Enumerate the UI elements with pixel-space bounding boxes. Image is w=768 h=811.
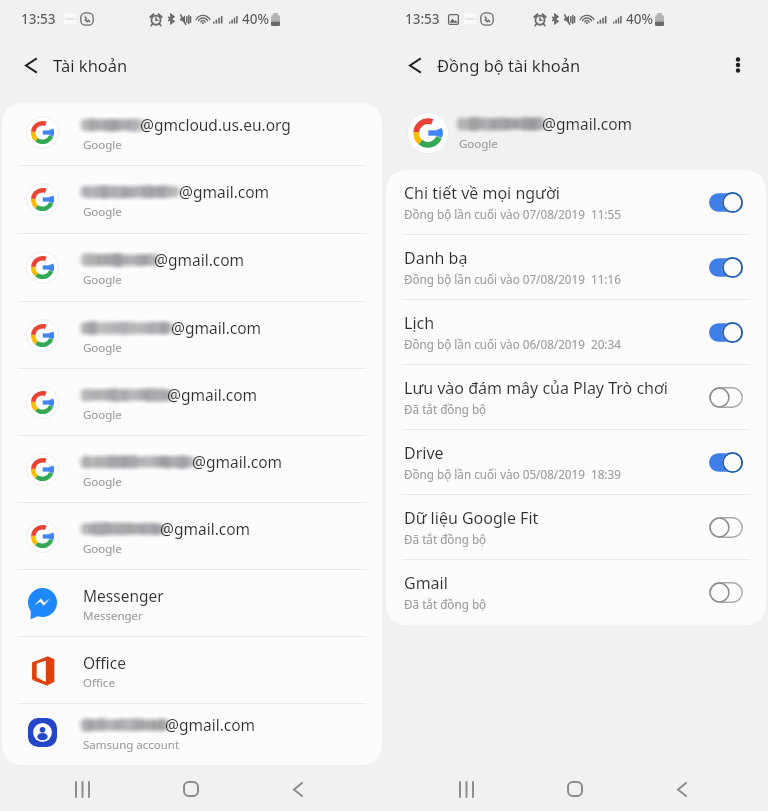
button[interactable]: @gmail.com (2, 436, 382, 502)
staticText: Đồng bộ lần cuối vào 07/08/2019 11:16 (404, 271, 621, 287)
staticText: Google (83, 407, 122, 423)
staticText: Đồng bộ lần cuối vào 06/08/2019 20:34 (404, 336, 621, 352)
button[interactable]: Drive (386, 430, 766, 494)
button[interactable]: Navigate up (8, 38, 54, 96)
staticText: Đồng bộ tài khoản (437, 54, 581, 76)
button[interactable]: @gmail.com (2, 302, 382, 368)
staticText: Google (83, 272, 122, 288)
staticText: @gmail.com (160, 518, 251, 539)
button[interactable]: @gmail.com (2, 166, 382, 233)
button[interactable]: Back (658, 765, 706, 811)
staticText: Google (83, 541, 122, 557)
button[interactable]: Back (274, 765, 322, 811)
staticText: Google (83, 474, 122, 490)
button[interactable]: Home (167, 765, 215, 811)
staticText: @gmail.com (179, 181, 270, 202)
staticText: @gmail.com (165, 714, 256, 735)
staticText: Gmail (404, 572, 448, 594)
staticText: 13:53 (405, 10, 440, 28)
staticText: Google (83, 340, 122, 356)
staticText: Chi tiết về mọi người (404, 182, 560, 204)
staticText: @gmail.com (167, 384, 258, 405)
staticText: @gmcloud.us.eu.org (140, 114, 291, 135)
button[interactable]: Danh bạ (386, 235, 766, 299)
button[interactable]: Chi tiết về mọi người (386, 170, 766, 234)
button[interactable]: @gmcloud.us.eu.org (2, 103, 382, 165)
button[interactable]: Turn on sync (709, 387, 743, 408)
button[interactable]: @gmail.com (2, 234, 382, 301)
button[interactable]: Turn off sync (709, 192, 743, 213)
button[interactable]: Gmail (386, 560, 766, 624)
staticText: Messenger (83, 585, 164, 606)
staticText: Đồng bộ lần cuối vào 07/08/2019 11:55 (404, 206, 621, 222)
staticText: Samsung account (83, 737, 180, 753)
button[interactable]: Dữ liệu Google Fit (386, 495, 766, 559)
staticText: Đã tắt đồng bộ (404, 531, 487, 547)
staticText: Google (459, 136, 498, 152)
button[interactable]: Turn off sync (709, 257, 743, 278)
button[interactable]: @gmail.com (2, 369, 382, 435)
button[interactable]: Home (551, 765, 599, 811)
staticText: @gmail.com (171, 317, 262, 338)
staticText: @gmail.com (192, 451, 283, 472)
staticText: Đồng bộ lần cuối vào 05/08/2019 18:39 (404, 466, 621, 482)
button[interactable]: Recent apps (58, 765, 106, 811)
button[interactable]: Turn off sync (709, 322, 743, 343)
button[interactable]: Turn on sync (709, 582, 743, 603)
button[interactable]: More options (715, 38, 761, 96)
button[interactable]: Recent apps (442, 765, 490, 811)
staticText: Drive (404, 442, 444, 464)
button[interactable]: Messenger (2, 570, 382, 636)
staticText: Messenger (83, 608, 143, 624)
button[interactable]: @gmail.com (384, 96, 768, 170)
staticText: Lưu vào đám mây của Play Trò chơi (404, 377, 668, 399)
staticText: Lịch (404, 312, 435, 334)
button[interactable]: Turn on sync (709, 517, 743, 538)
staticText: Google (83, 204, 122, 220)
button[interactable]: @gmail.com (2, 503, 382, 569)
staticText: @gmail.com (542, 113, 633, 134)
button[interactable]: Office (2, 637, 382, 703)
staticText: 40% (242, 10, 269, 28)
staticText: Tài khoản (53, 54, 128, 76)
staticText: Đã tắt đồng bộ (404, 596, 487, 612)
staticText: Office (83, 652, 126, 673)
button[interactable]: Navigate up (392, 38, 438, 96)
staticText: @gmail.com (154, 249, 245, 270)
button[interactable]: Lưu vào đám mây của Play Trò chơi (386, 365, 766, 429)
staticText: Đã tắt đồng bộ (404, 401, 487, 417)
button[interactable]: Turn off sync (709, 452, 743, 473)
button[interactable]: Lịch (386, 300, 766, 364)
staticText: Google (83, 137, 122, 153)
staticText: 13:53 (21, 10, 56, 28)
staticText: 40% (626, 10, 653, 28)
staticText: Danh bạ (404, 247, 468, 269)
button[interactable]: @gmail.com (2, 704, 382, 761)
staticText: Office (83, 675, 115, 691)
staticText: Dữ liệu Google Fit (404, 507, 539, 529)
